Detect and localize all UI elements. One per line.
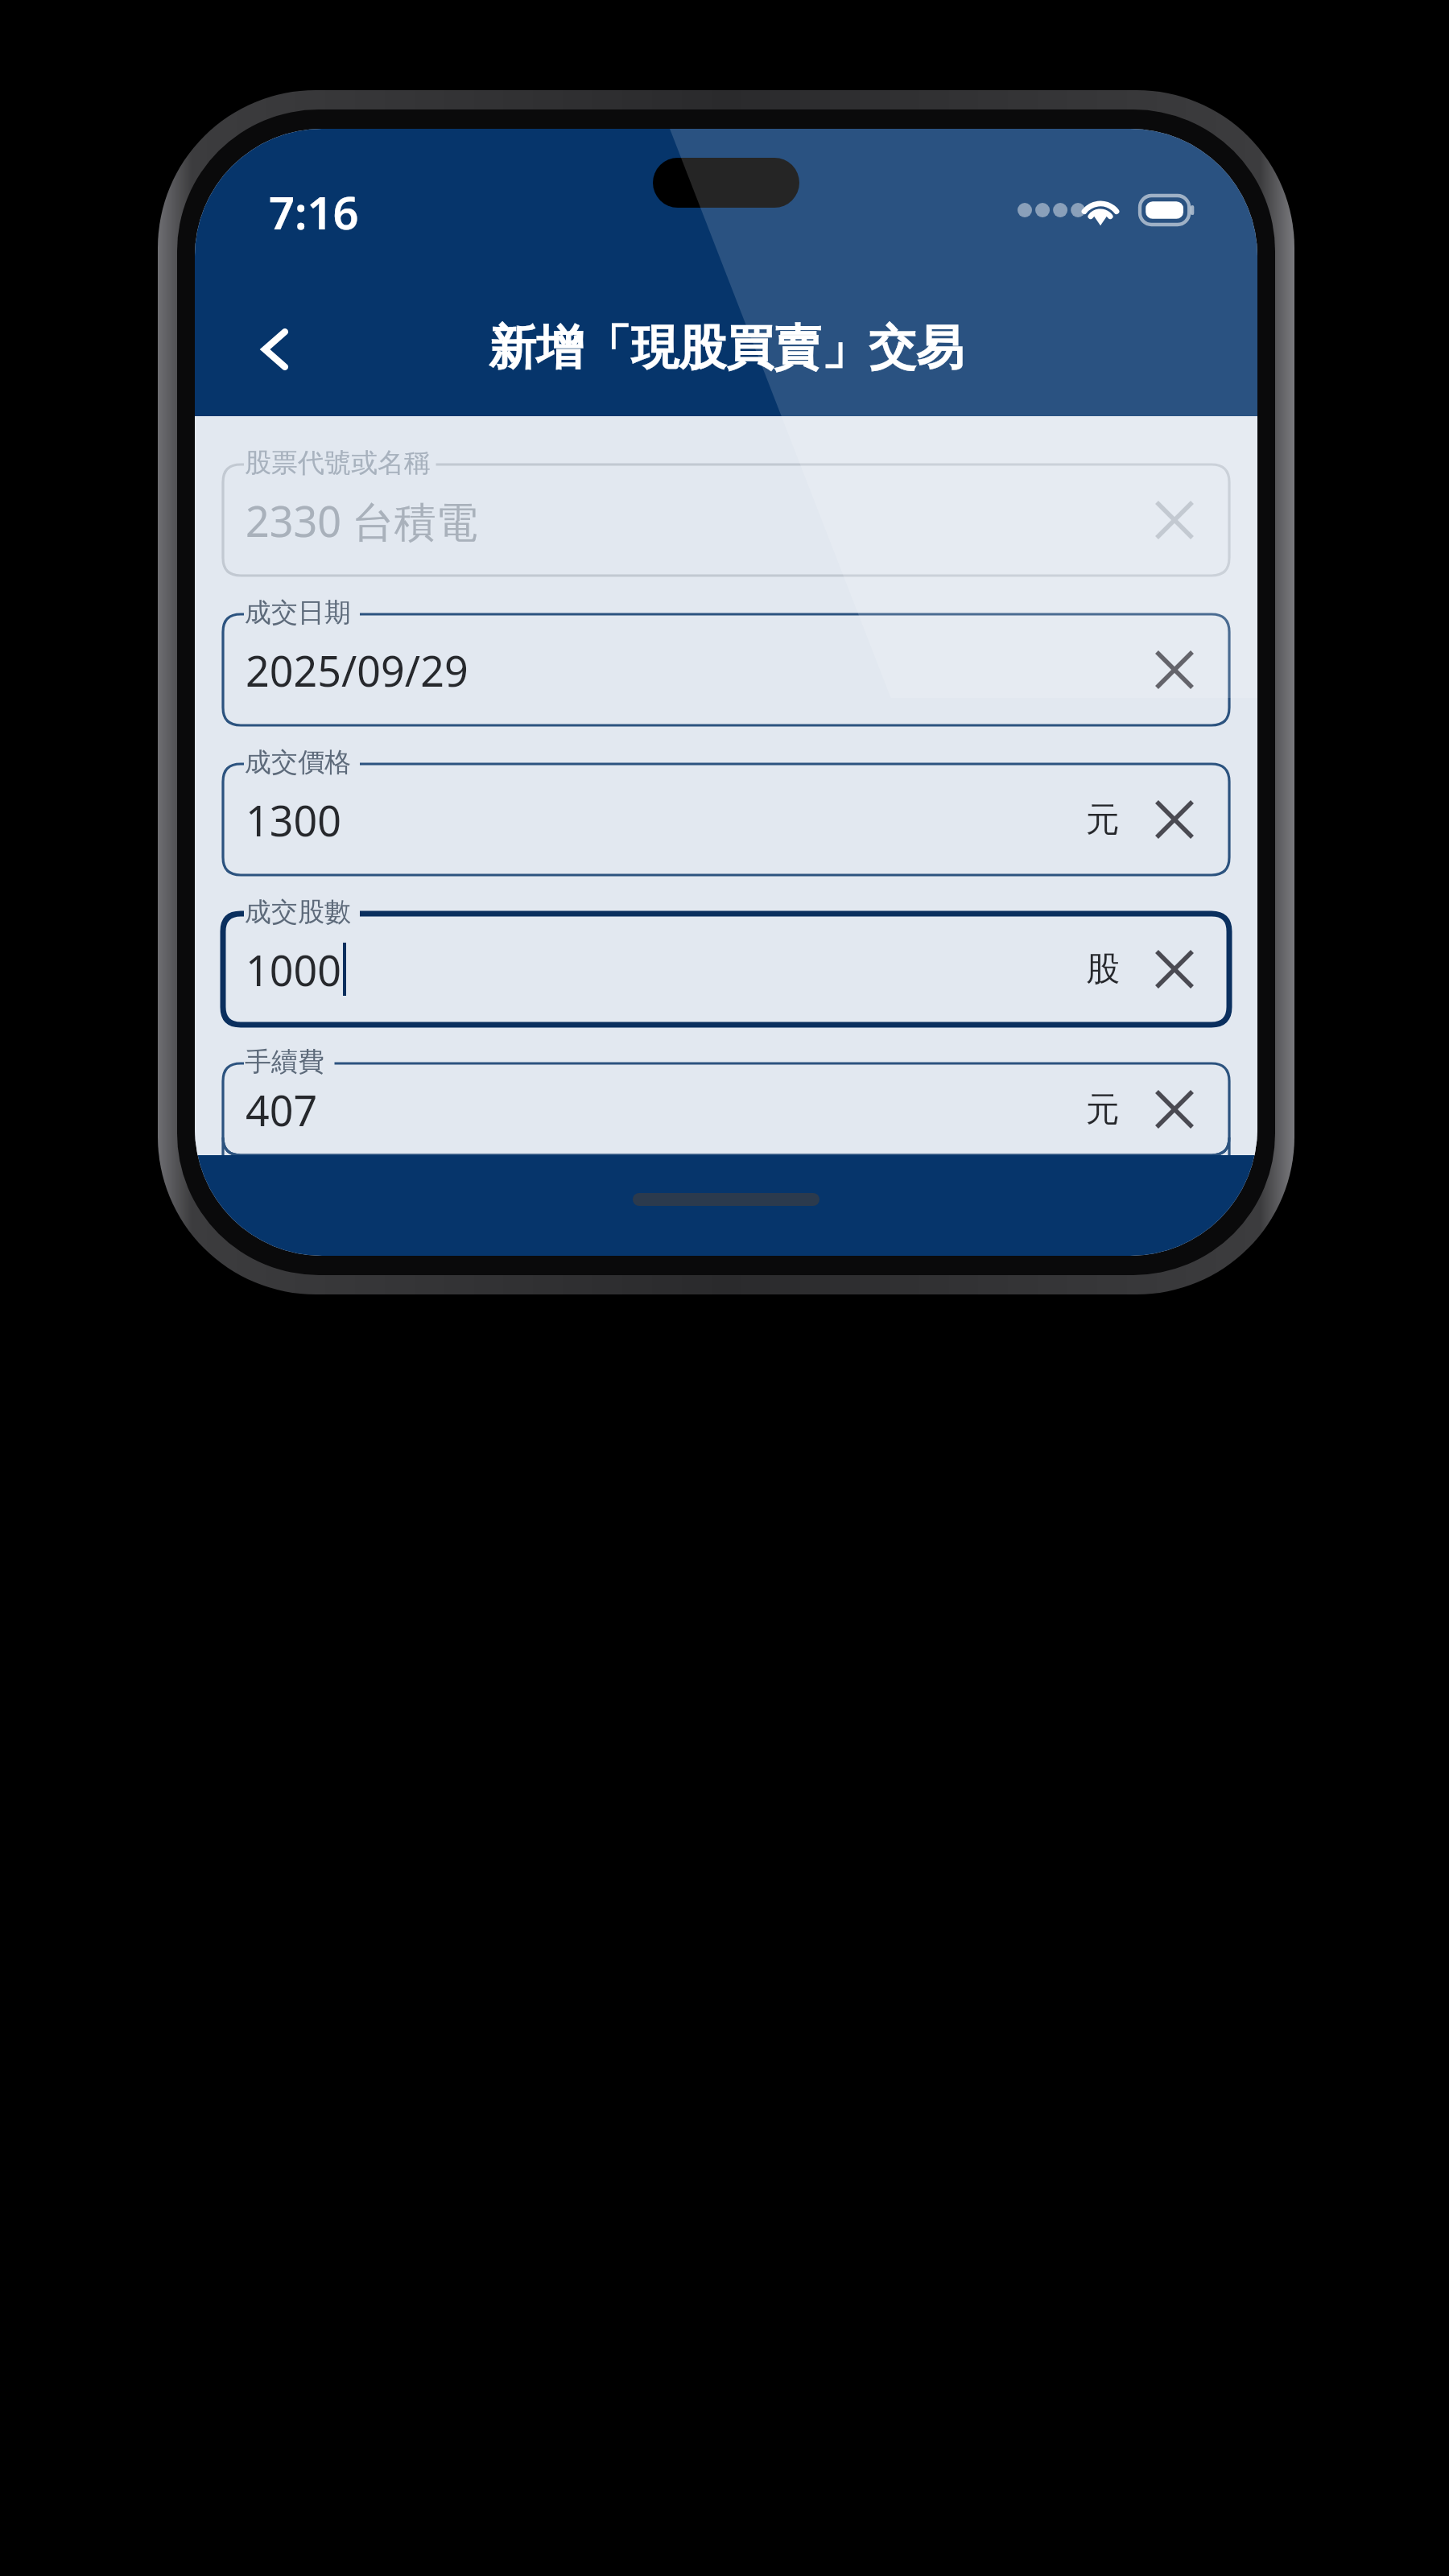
button[interactable]: Back (227, 301, 324, 398)
button[interactable]: Clear 成交日期 (1144, 639, 1205, 700)
button[interactable]: 成交日期 (223, 597, 1229, 725)
staticText: 元 (1086, 799, 1120, 841)
button[interactable]: Clear 手續費 (1144, 1079, 1205, 1140)
button[interactable]: 手續費 (223, 1046, 1229, 1155)
button[interactable]: Clear 成交股數 (1144, 939, 1205, 1000)
staticText: 1000 (246, 941, 341, 998)
staticText: 成交日期 (245, 596, 351, 630)
staticText: 2330 台積電 (246, 492, 478, 549)
staticText: 手續費 (245, 1045, 324, 1079)
staticText: 成交股數 (245, 895, 351, 929)
staticText: 股 (1086, 948, 1120, 991)
button[interactable]: 成交價格 (223, 746, 1229, 875)
button[interactable]: Clear 股票代號或名稱 (1144, 489, 1205, 551)
staticText: 7:16 (269, 181, 359, 242)
staticText: 元 (1086, 1088, 1120, 1131)
staticText: 2025/09/29 (246, 642, 469, 699)
staticText: 股票代號或名稱 (245, 446, 431, 480)
staticText: 407 (246, 1081, 318, 1138)
staticText: 1300 (246, 791, 341, 848)
staticText: 新增「現股買賣」交易 (489, 318, 964, 378)
button[interactable]: 成交股數 (223, 896, 1229, 1025)
button[interactable]: Clear 成交價格 (1144, 789, 1205, 850)
staticText: 成交價格 (245, 745, 351, 779)
button[interactable]: 股票代號或名稱 (223, 447, 1229, 576)
